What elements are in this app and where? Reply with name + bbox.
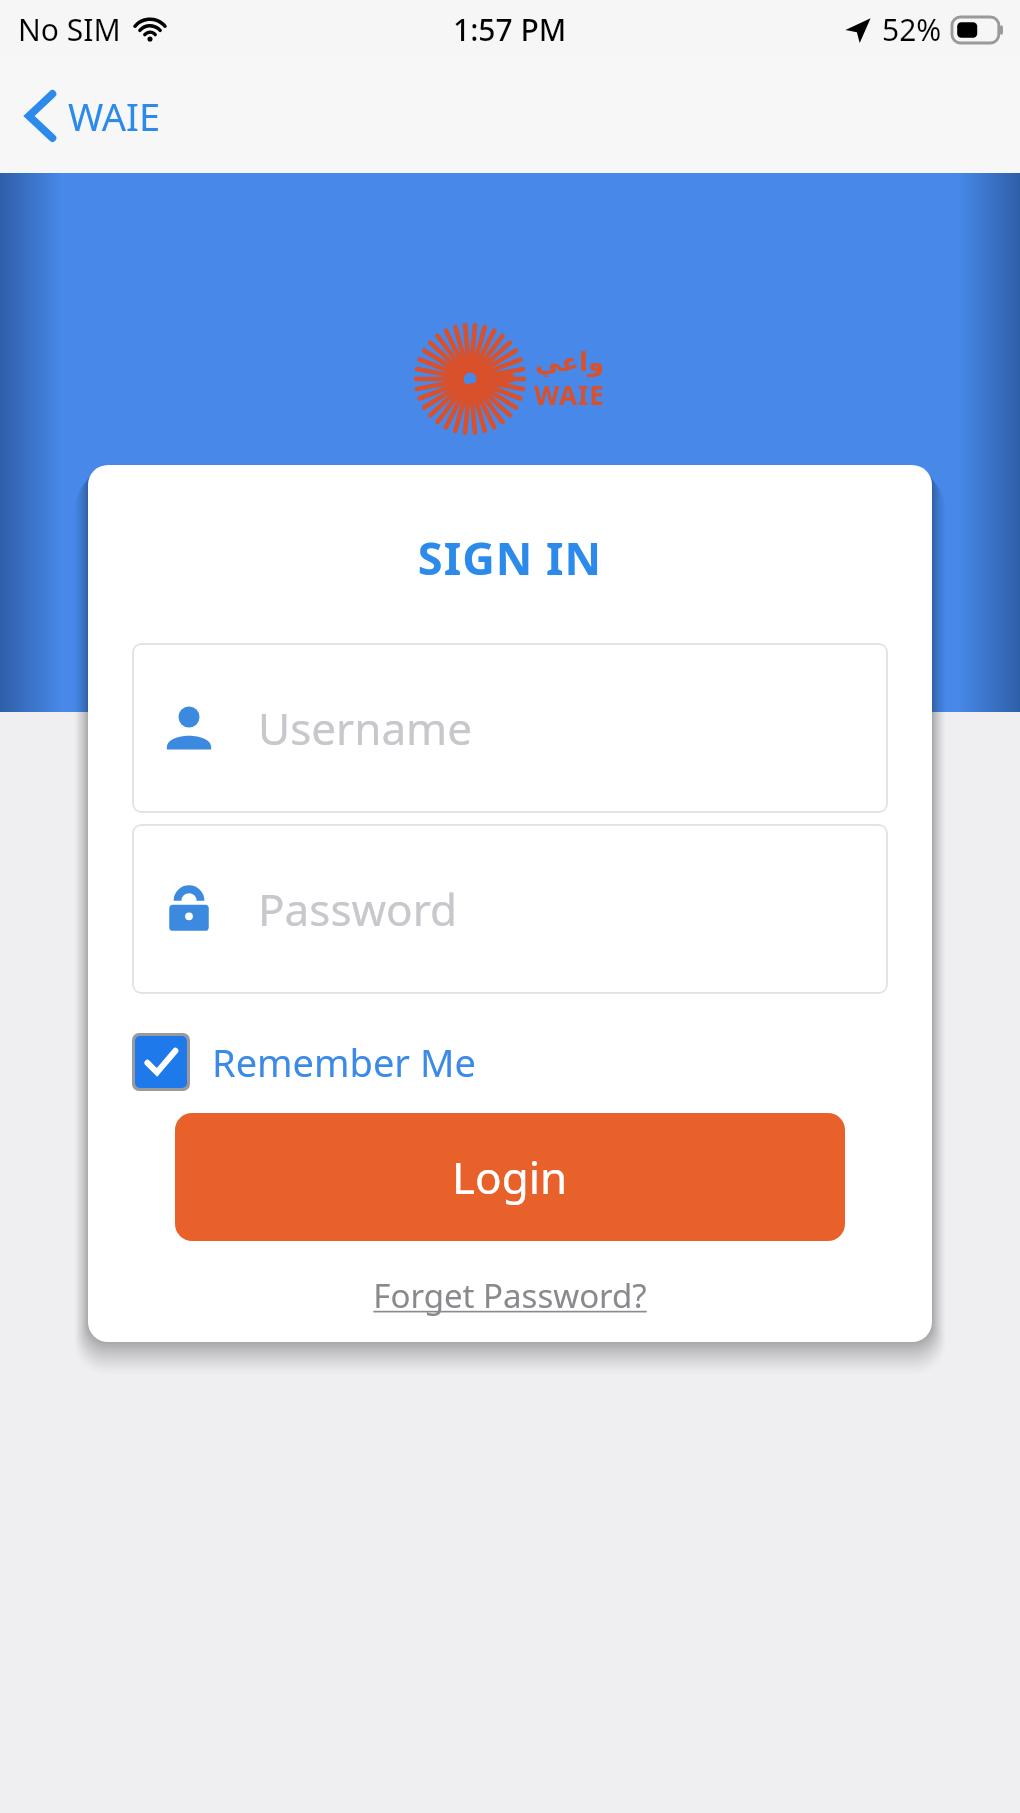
button[interactable]: WAIE — [20, 82, 167, 150]
staticText: WAIE — [534, 377, 605, 412]
staticText: Password — [258, 879, 458, 939]
staticText: 52% — [882, 9, 942, 50]
button[interactable]: Username — [132, 643, 888, 813]
staticText: Login — [452, 1147, 568, 1207]
staticText: SIGN IN — [88, 527, 932, 588]
staticText: واعي — [535, 347, 605, 377]
staticText: No SIM — [18, 9, 121, 50]
staticText: 1:57 PM — [453, 9, 567, 50]
button[interactable]: Forget Password? — [88, 1273, 932, 1318]
button[interactable]: Login — [175, 1113, 845, 1241]
button[interactable]: Password — [132, 824, 888, 994]
button[interactable]: Remember Me — [132, 1033, 476, 1091]
staticText: WAIE — [68, 90, 161, 142]
staticText: Username — [258, 698, 473, 758]
staticText: Remember Me — [212, 1036, 476, 1088]
